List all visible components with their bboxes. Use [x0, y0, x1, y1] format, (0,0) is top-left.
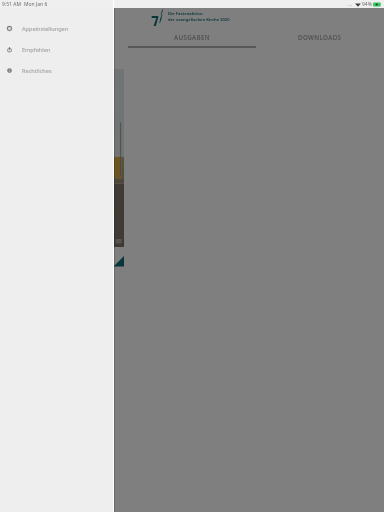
staticText: Appeinstellungen: [22, 25, 69, 33]
button[interactable]: Rechtliches: [0, 60, 113, 81]
button[interactable]: Appeinstellungen: [0, 18, 113, 39]
button[interactable]: Close navigation drawer: [0, 8, 384, 512]
staticText: Mon Jan 6: [24, 1, 48, 8]
button[interactable]: AUSGABEN: [128, 26, 256, 48]
button[interactable]: DOWNLOADS: [256, 26, 384, 48]
staticText: Die Fastenaktion: [168, 11, 203, 17]
staticText: Empfehlen: [22, 46, 51, 54]
staticText: DOWNLOADS: [298, 33, 342, 41]
staticText: ...: [348, 1, 353, 8]
staticText: 9:51 AM: [2, 1, 21, 8]
button[interactable]: AKTUELLES: [0, 26, 128, 48]
button[interactable]: Empfehlen: [0, 39, 113, 60]
staticText: der evangelischen Kirche 2020: [168, 17, 230, 23]
staticText: Rechtliches: [22, 67, 52, 75]
staticText: AUSGABEN: [174, 33, 211, 41]
button[interactable]: [4, 69, 124, 271]
staticText: 94%: [362, 1, 372, 8]
